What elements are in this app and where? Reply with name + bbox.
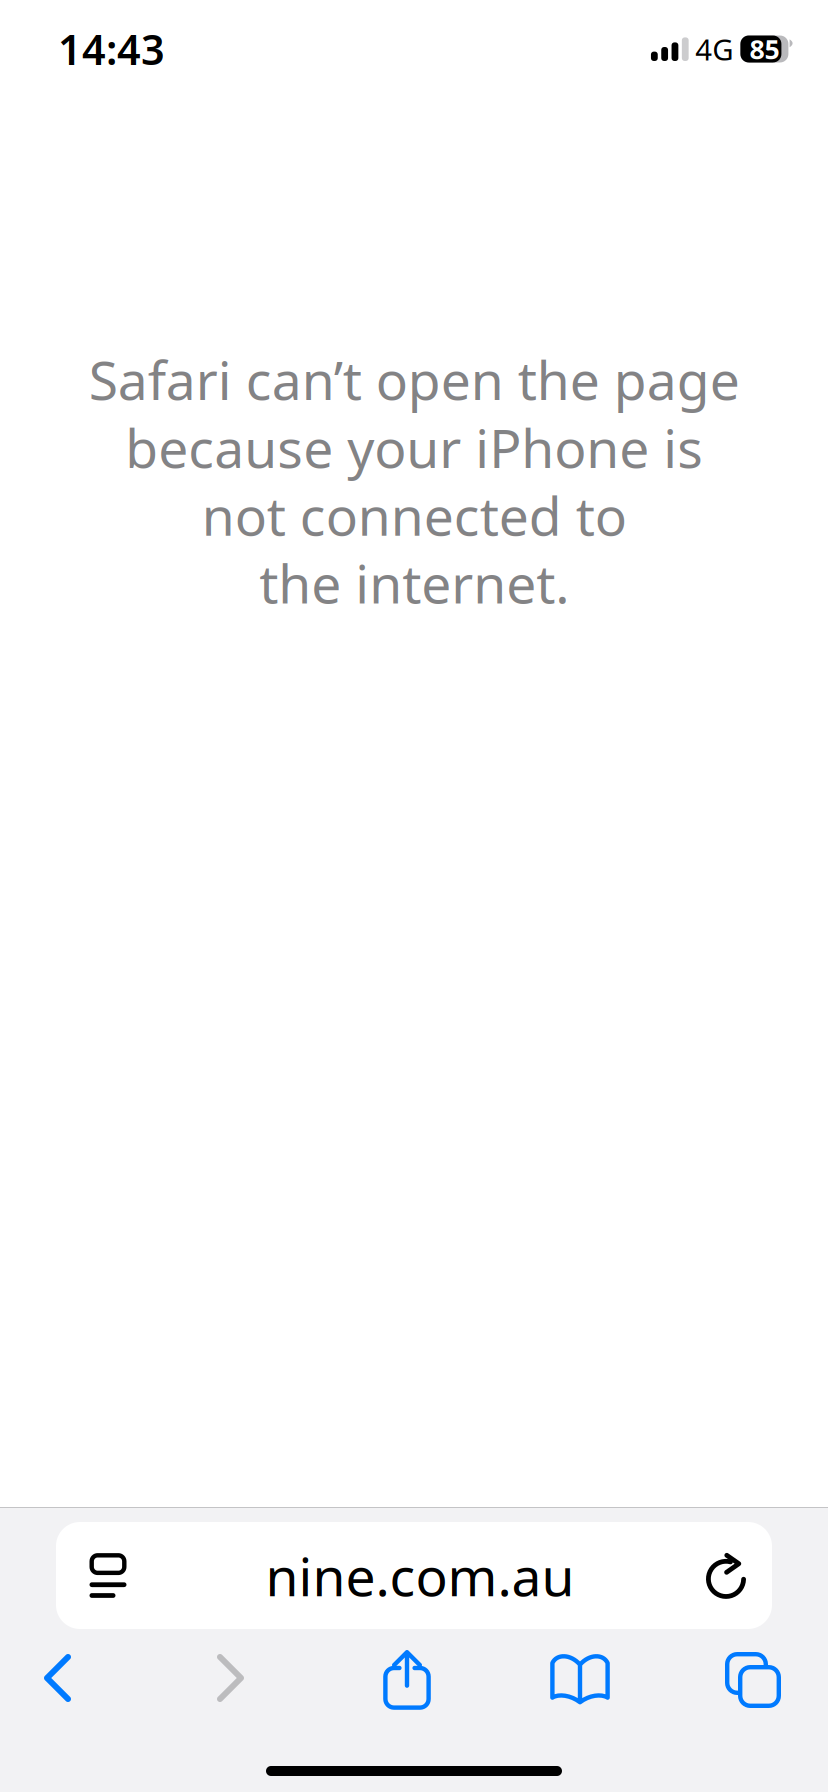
staticText: 85 <box>749 31 779 67</box>
button[interactable]: Share <box>350 1634 464 1726</box>
button[interactable]: nine.com.au <box>56 1522 772 1629</box>
button[interactable]: Bookmarks <box>523 1634 637 1726</box>
staticText: 14:43 <box>58 22 165 76</box>
button[interactable]: Back <box>4 1634 118 1726</box>
staticText: Safari can’t open the page because your … <box>88 344 739 618</box>
staticText: 4G <box>695 29 733 68</box>
button[interactable]: Tabs <box>696 1634 810 1726</box>
button[interactable]: Forward <box>177 1634 291 1726</box>
staticText: nine.com.au <box>265 1540 574 1611</box>
